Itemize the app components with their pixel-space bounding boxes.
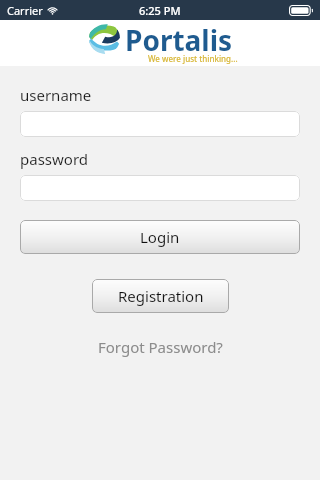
other: Portalis logo: [88, 23, 121, 54]
button[interactable]: Text input: [20, 175, 300, 201]
button[interactable]: Login: [20, 220, 300, 254]
staticText: Forgot Password?: [98, 337, 223, 357]
button[interactable]: Registration: [92, 279, 229, 313]
staticText: 6:25 PM: [139, 3, 181, 18]
staticText: Portalis: [125, 21, 233, 59]
staticText: Carrier: [7, 3, 43, 18]
staticText: We were just thinking...: [148, 53, 238, 64]
staticText: Registration: [118, 286, 204, 306]
staticText: Login: [140, 227, 180, 247]
button[interactable]: Text input: [20, 111, 300, 137]
staticText: username: [20, 85, 92, 105]
staticText: password: [20, 149, 88, 169]
button[interactable]: Forgot Password?: [0, 336, 320, 358]
